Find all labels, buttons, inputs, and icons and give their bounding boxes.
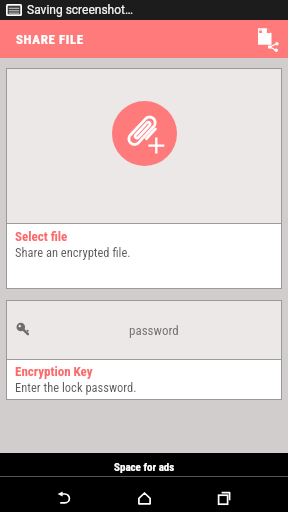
button[interactable]: password bbox=[7, 301, 281, 399]
staticText: password bbox=[129, 323, 179, 338]
staticText: SHARE FILE bbox=[16, 32, 84, 47]
button[interactable]: Back bbox=[48, 486, 80, 510]
button[interactable]: Share file bbox=[250, 22, 284, 56]
staticText: Enter the lock password. bbox=[15, 380, 137, 395]
button[interactable]: Space for ads bbox=[0, 453, 288, 476]
staticText: Encryption Key bbox=[15, 364, 93, 379]
staticText: Select file bbox=[15, 229, 68, 244]
staticText: Share an encrypted file. bbox=[15, 245, 131, 260]
button[interactable]: Recent apps bbox=[208, 486, 240, 510]
button[interactable]: Attach file bbox=[7, 69, 281, 288]
button[interactable]: Attach file bbox=[112, 101, 177, 166]
staticText: Saving screenshot… bbox=[27, 3, 134, 17]
staticText: Space for ads bbox=[114, 461, 175, 474]
button[interactable]: Home bbox=[128, 486, 160, 510]
